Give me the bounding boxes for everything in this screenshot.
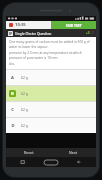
button[interactable]: D [6, 118, 96, 133]
staticText: -1 [91, 31, 94, 35]
button[interactable]: A [6, 70, 96, 85]
button[interactable]: Back [72, 157, 86, 167]
staticText: C [11, 107, 14, 113]
staticText: 62 g [21, 107, 28, 112]
staticText: +3 [86, 31, 90, 35]
staticText: B [11, 91, 14, 97]
staticText: 62 g [21, 123, 28, 128]
button[interactable]: END TEST [51, 21, 96, 29]
staticText: One many grains of carbon must be added … [9, 40, 93, 49]
button[interactable]: B [6, 86, 96, 101]
staticText: 62 g [21, 75, 28, 80]
staticText: A [11, 75, 14, 81]
staticText: END TEST [66, 23, 82, 28]
staticText: pressure by 2.5 mm at any temperature at… [9, 51, 93, 60]
button[interactable]: Recents [16, 157, 30, 167]
button[interactable]: Single Choice Question [6, 29, 96, 37]
button[interactable]: Home [40, 157, 62, 167]
staticText: Ans. [9, 62, 16, 66]
button[interactable]: Next [51, 148, 96, 157]
staticText: Reset [24, 150, 34, 155]
button[interactable]: Reset [6, 148, 51, 157]
button[interactable]: C [6, 102, 96, 117]
button[interactable]: 10:35 [6, 21, 51, 29]
staticText: 62 g [21, 91, 28, 96]
staticText: Next [69, 150, 78, 155]
staticText: D [11, 123, 15, 129]
staticText: Single Choice Question [15, 31, 86, 35]
staticText: 10:35 [15, 22, 26, 28]
